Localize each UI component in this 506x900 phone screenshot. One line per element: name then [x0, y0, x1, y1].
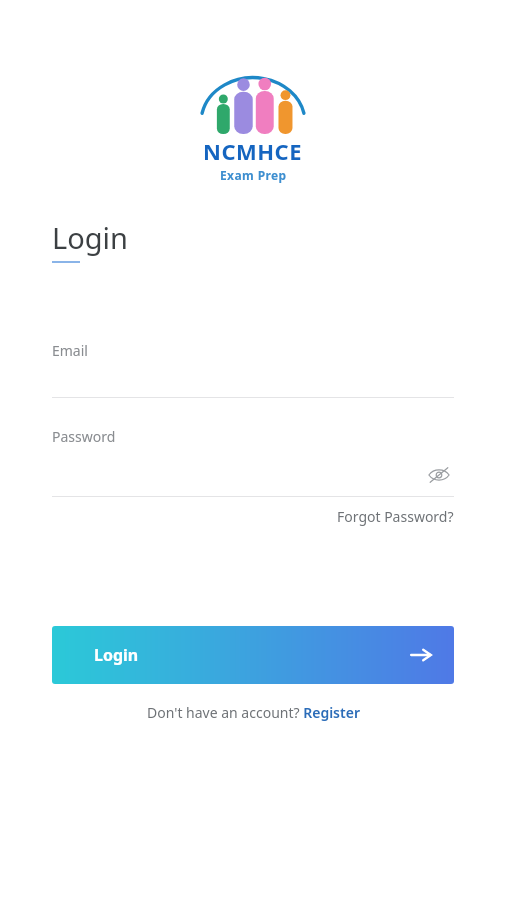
staticText: Email: [52, 341, 88, 360]
staticText: Login: [94, 644, 139, 666]
button[interactable]: Login: [52, 626, 454, 684]
staticText: NCMHCE: [203, 136, 303, 166]
staticText: Password: [52, 427, 116, 446]
staticText: Don't have an account? Register: [147, 703, 360, 722]
staticText: Forgot Password?: [337, 507, 454, 526]
staticText: Login: [52, 218, 128, 257]
button[interactable]: Don't have an account? Register: [52, 703, 454, 722]
staticText: Exam Prep: [220, 167, 287, 183]
button[interactable]: Forgot Password?: [337, 507, 454, 526]
button[interactable]: Show password: [424, 460, 454, 490]
